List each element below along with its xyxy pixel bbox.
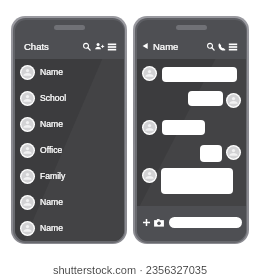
button[interactable] <box>200 145 222 162</box>
button[interactable] <box>188 91 223 106</box>
button[interactable] <box>169 217 242 228</box>
button[interactable]: Name <box>15 191 124 213</box>
staticText: School <box>40 93 67 103</box>
staticText: Family <box>40 171 66 181</box>
button[interactable]: Name <box>15 113 124 135</box>
button[interactable]: Search <box>81 41 93 53</box>
button[interactable]: Attach <box>141 217 152 228</box>
button[interactable]: Name <box>142 39 174 53</box>
staticText: Name <box>40 119 63 129</box>
button[interactable]: School <box>15 87 124 109</box>
button[interactable] <box>161 168 233 194</box>
button[interactable]: New chat <box>94 41 106 53</box>
staticText: Name <box>153 41 179 52</box>
staticText: Name <box>40 223 63 233</box>
button[interactable]: Search <box>205 41 217 53</box>
staticText: Chats <box>24 41 49 52</box>
button[interactable]: Name <box>15 61 124 83</box>
button[interactable] <box>162 120 205 135</box>
button[interactable]: Menu <box>227 41 239 53</box>
staticText: shutterstock.com · 2356327035 <box>0 264 260 280</box>
staticText: Office <box>40 145 63 155</box>
button[interactable]: Office <box>15 139 124 161</box>
button[interactable]: Call <box>216 41 228 53</box>
button[interactable]: Menu <box>106 41 118 53</box>
button[interactable]: Name <box>15 217 124 239</box>
button[interactable]: Chats <box>24 39 49 53</box>
staticText: Name <box>40 197 63 207</box>
button[interactable]: Camera <box>153 217 165 229</box>
staticText: Name <box>40 67 63 77</box>
button[interactable]: Family <box>15 165 124 187</box>
button[interactable] <box>162 67 237 82</box>
